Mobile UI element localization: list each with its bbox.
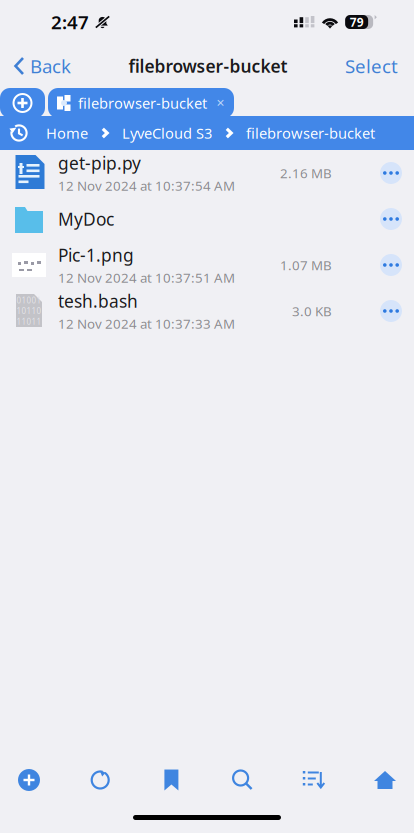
staticText: 2:47 — [51, 10, 89, 34]
button[interactable]: History — [0, 116, 38, 150]
button[interactable]: filebrowser-bucket — [48, 88, 234, 118]
staticText: Back — [30, 54, 71, 78]
staticText: Pic-1.png — [58, 244, 134, 267]
button[interactable]: Add — [4, 756, 54, 804]
staticText: 79 — [350, 14, 364, 30]
button[interactable]: Home — [38, 116, 96, 150]
button[interactable]: get-pip.py — [0, 150, 414, 196]
staticText: tesh.bash — [58, 290, 138, 313]
staticText: filebrowser-bucket — [78, 93, 207, 113]
button[interactable]: LyveCloud S3 — [114, 116, 220, 150]
staticText: filebrowser-bucket — [128, 54, 287, 77]
staticText: 12 Nov 2024 at 10:37:51 AM — [58, 269, 235, 286]
staticText: 3.0 KB — [292, 302, 332, 320]
button[interactable]: New tab — [0, 88, 45, 118]
staticText: MyDoc — [58, 207, 114, 230]
staticText: filebrowser-bucket — [246, 123, 375, 143]
button[interactable]: Back — [0, 44, 81, 88]
button[interactable]: Home — [360, 756, 410, 804]
staticText: 01001 — [16, 295, 41, 306]
button[interactable]: Bookmarks — [146, 756, 196, 804]
button[interactable]: Pic-1.png — [0, 242, 414, 288]
staticText: 11011 — [16, 316, 41, 327]
staticText: 12 Nov 2024 at 10:37:54 AM — [58, 177, 235, 194]
button[interactable]: MyDoc — [0, 196, 414, 242]
staticText: get-pip.py — [58, 152, 141, 175]
button[interactable]: Sort — [289, 756, 339, 804]
button[interactable]: Select — [335, 44, 414, 88]
staticText: 12 Nov 2024 at 10:37:33 AM — [58, 315, 235, 332]
button[interactable]: filebrowser-bucket — [238, 116, 383, 150]
staticText: 2.16 MB — [280, 164, 332, 182]
staticText: ✕ — [216, 97, 225, 109]
staticText: 1.07 MB — [280, 256, 332, 274]
staticText: Home — [46, 123, 88, 143]
staticText: LyveCloud S3 — [122, 123, 212, 143]
button[interactable]: Refresh — [75, 756, 125, 804]
staticText: 10110 — [16, 306, 41, 316]
button[interactable]: Search — [218, 756, 268, 804]
staticText: Select — [345, 54, 398, 78]
button[interactable]: 01001 — [0, 288, 414, 334]
